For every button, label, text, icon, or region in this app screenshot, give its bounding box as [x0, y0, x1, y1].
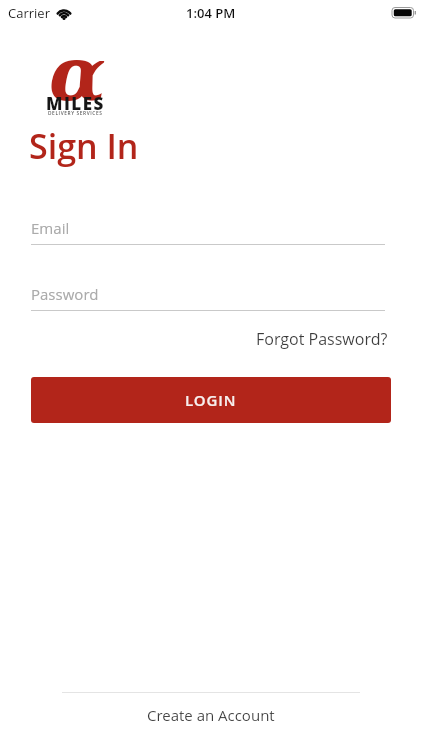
staticText: Sign In [29, 123, 139, 169]
button[interactable]: LOGIN [31, 377, 391, 423]
staticText: 1:04 PM [186, 4, 236, 22]
staticText: DELIVERY SERVICES [48, 110, 103, 117]
button[interactable]: Email [31, 218, 385, 245]
staticText: Email [31, 218, 70, 238]
staticText: Carrier [8, 4, 50, 22]
staticText: Forgot Password? [256, 328, 388, 350]
staticText: LOGIN [185, 390, 237, 410]
staticText: α [49, 31, 106, 118]
staticText: Create an Account [147, 705, 275, 725]
staticText: MILES [46, 92, 105, 115]
button[interactable]: Create an Account [147, 705, 275, 725]
button[interactable]: Forgot Password? [256, 328, 388, 350]
staticText: Password [31, 284, 99, 304]
button[interactable]: Password [31, 284, 385, 311]
